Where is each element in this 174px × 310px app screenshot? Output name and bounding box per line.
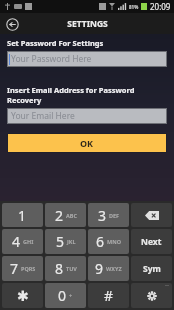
staticText: 1	[18, 206, 27, 225]
staticText: 81%	[129, 4, 139, 10]
staticText: 4	[12, 232, 21, 251]
button[interactable]: 6	[88, 229, 129, 254]
staticText: Your Email Here	[11, 110, 75, 122]
button[interactable]: 7	[2, 256, 43, 281]
staticText: 3	[98, 206, 107, 225]
staticText: 8	[55, 259, 64, 278]
staticText: +	[69, 292, 73, 299]
button[interactable]: Your Password Here	[7, 51, 167, 67]
staticText: JKL	[67, 238, 76, 245]
staticText: Your Password Here	[11, 53, 92, 65]
staticText: Set Password For Settings	[7, 38, 104, 48]
staticText: OK	[80, 137, 94, 149]
button[interactable]: Your Email Here	[7, 108, 167, 124]
staticText: 0	[58, 286, 67, 305]
button[interactable]: 3	[88, 203, 129, 227]
staticText: PQRS	[21, 265, 36, 272]
button[interactable]: #	[88, 283, 129, 308]
staticText: Insert Email Address for Password Recove…	[7, 85, 167, 105]
staticText: 9	[95, 259, 104, 278]
button[interactable]: Settings	[131, 283, 172, 308]
button[interactable]: 4	[2, 229, 43, 254]
staticText: 20:09	[150, 1, 171, 12]
staticText: WXYZ	[106, 265, 122, 272]
staticText: 2	[55, 206, 64, 225]
button[interactable]: 9	[88, 256, 129, 281]
staticText: MNO	[107, 238, 122, 245]
button[interactable]: Next	[131, 229, 172, 254]
staticText: ABC	[66, 212, 77, 219]
staticText: ····	[165, 283, 170, 288]
staticText: GHI	[23, 238, 34, 245]
staticText: 6	[96, 232, 105, 251]
staticText: 7	[10, 259, 19, 278]
button[interactable]: 8	[45, 256, 86, 281]
staticText: 5	[56, 232, 65, 251]
button[interactable]: Back	[3, 15, 21, 33]
button[interactable]: 2	[45, 203, 86, 227]
button[interactable]: 0	[45, 283, 86, 308]
staticText: Sym	[143, 263, 161, 275]
button[interactable]: Sym	[131, 256, 172, 281]
staticText: ✱	[17, 288, 29, 304]
button[interactable]: ✱	[2, 283, 43, 308]
staticText: SETTINGS	[67, 18, 108, 30]
staticText: DEF	[109, 212, 120, 219]
button[interactable]: 5	[45, 229, 86, 254]
button[interactable]: Delete	[131, 203, 172, 227]
staticText: Next	[141, 236, 162, 248]
button[interactable]: 1	[2, 203, 43, 227]
staticText: #	[104, 286, 114, 305]
staticText: TUV	[66, 265, 77, 272]
button[interactable]: OK	[7, 133, 167, 153]
